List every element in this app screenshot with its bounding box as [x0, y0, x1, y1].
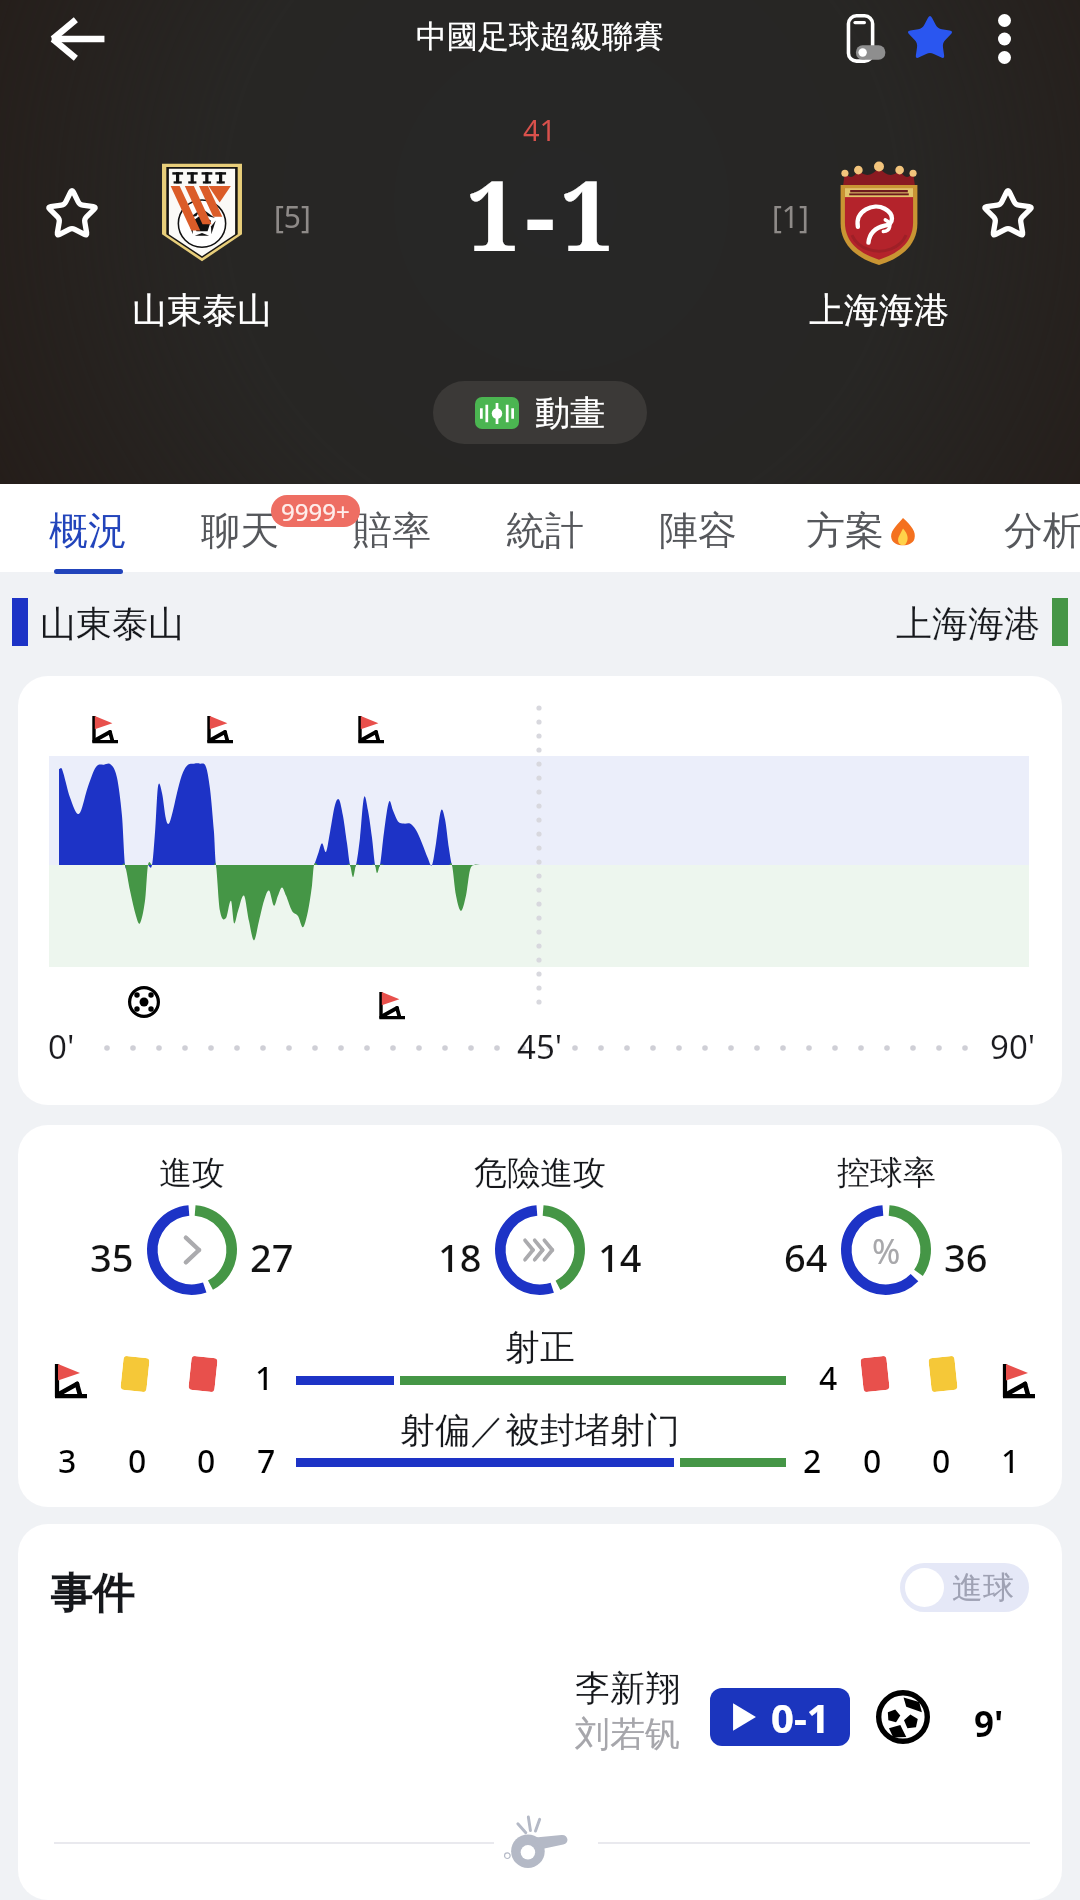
staticText: 14 [598, 1231, 642, 1283]
staticText: 進球 [952, 1568, 1014, 1607]
button[interactable]: 山東泰山 [120, 152, 284, 338]
staticText: % [872, 1228, 901, 1272]
staticText: 0 [932, 1439, 951, 1483]
staticText: 事件 [50, 1568, 134, 1621]
staticText: 賠率 [353, 506, 431, 555]
staticText: 4 [819, 1356, 838, 1400]
staticText: 27 [250, 1231, 294, 1283]
staticText: 陣容 [659, 506, 737, 555]
staticText: 上海海港 [896, 601, 1040, 646]
staticText: 64 [784, 1231, 828, 1283]
button[interactable]: Favourite home team [24, 167, 120, 263]
staticText: 9999+ [281, 495, 350, 527]
button[interactable]: Favourite away team [960, 167, 1056, 263]
staticText: 0 [197, 1439, 216, 1483]
staticText: 統計 [506, 506, 584, 555]
button[interactable]: 陣容 [622, 484, 774, 572]
staticText: [1] [772, 196, 809, 237]
staticText: 2 [803, 1439, 822, 1483]
staticText: 90' [990, 1024, 1036, 1069]
staticText: 射正 [505, 1325, 575, 1369]
staticText: 0 [863, 1439, 882, 1483]
staticText: 3 [58, 1439, 77, 1483]
button[interactable]: Favourite [882, 0, 978, 87]
button[interactable]: 動畫 [433, 381, 647, 444]
staticText: 45' [517, 1024, 563, 1069]
staticText: 41 [523, 110, 557, 149]
button[interactable]: 上海海港 [797, 152, 961, 338]
staticText: 山東泰山 [40, 601, 184, 646]
button[interactable]: 聊天 [164, 484, 316, 572]
staticText: 方案 [806, 506, 884, 555]
staticText: 危險進攻 [474, 1152, 606, 1194]
staticText: 1 - 1 [466, 148, 605, 279]
staticText: 概況 [49, 506, 127, 555]
button[interactable]: 方案 [786, 484, 938, 572]
button[interactable]: More options [956, 0, 1052, 87]
staticText: 控球率 [837, 1152, 936, 1194]
button[interactable]: 進球 [900, 1563, 1029, 1612]
button[interactable]: 0-1 [710, 1688, 850, 1746]
staticText: 射偏／被封堵射门 [400, 1408, 680, 1452]
staticText: 中國足球超級聯賽 [416, 17, 664, 56]
button[interactable]: Cast to device [818, 0, 914, 87]
staticText: 36 [944, 1231, 988, 1283]
staticText: 分析 [1004, 506, 1080, 555]
staticText: 進攻 [159, 1152, 225, 1194]
staticText: 1 [255, 1356, 274, 1400]
staticText: 0-1 [771, 1690, 830, 1744]
staticText: 動畫 [535, 391, 605, 435]
staticText: 7 [257, 1439, 276, 1483]
staticText: 上海海港 [809, 288, 949, 332]
staticText: 刘若钒 [575, 1712, 680, 1756]
staticText: 1 [1001, 1439, 1020, 1483]
button[interactable]: 分析 [967, 484, 1080, 572]
staticText: [5] [274, 196, 311, 237]
staticText: 9' [974, 1700, 1004, 1748]
staticText: 35 [90, 1231, 134, 1283]
staticText: 李新翔 [575, 1666, 680, 1710]
button[interactable]: 統計 [469, 484, 621, 572]
button[interactable]: Back [29, 0, 125, 87]
staticText: 18 [438, 1231, 482, 1283]
button[interactable]: 賠率 [316, 484, 468, 572]
button[interactable]: 概況 [12, 484, 164, 572]
staticText: 山東泰山 [132, 288, 272, 332]
staticText: 0' [48, 1024, 75, 1069]
staticText: 0 [128, 1439, 147, 1483]
staticText: 聊天 [201, 506, 279, 555]
